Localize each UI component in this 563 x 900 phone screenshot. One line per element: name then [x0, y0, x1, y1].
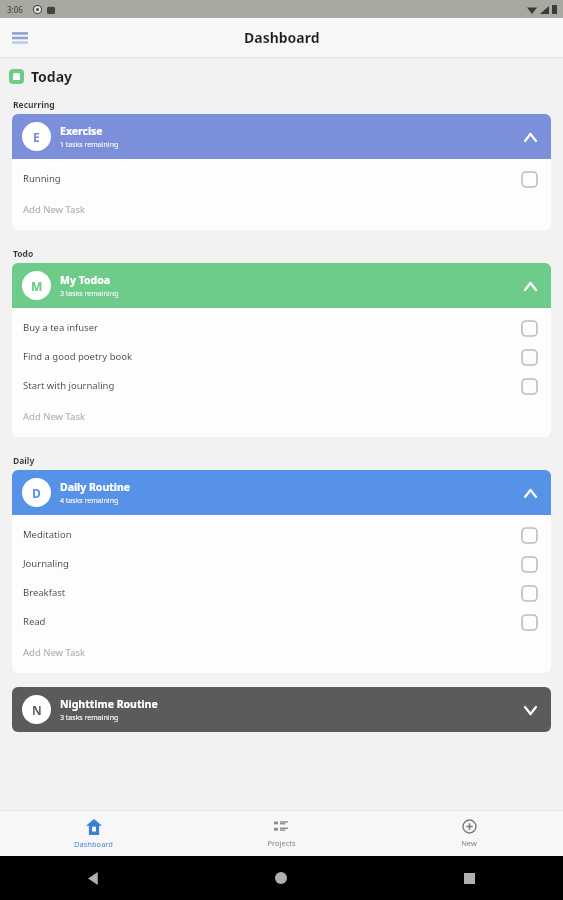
button[interactable]: Breakfast — [12, 578, 551, 607]
button[interactable]: M — [12, 263, 551, 308]
button[interactable]: Open navigation menu — [5, 23, 35, 53]
button[interactable]: D — [12, 470, 551, 515]
staticText: Daily — [13, 455, 35, 467]
staticText: My Todoa — [60, 273, 111, 287]
staticText: E — [33, 129, 40, 145]
button[interactable]: Running — [12, 164, 551, 193]
button[interactable]: New — [375, 811, 563, 856]
staticText: M — [31, 278, 43, 294]
staticText: Dashboard — [244, 28, 320, 47]
staticText: 1 tasks remaining — [60, 140, 119, 150]
button[interactable]: Projects — [187, 811, 375, 856]
staticText: Read — [23, 615, 518, 628]
staticText: Find a good poetry book — [23, 350, 518, 363]
button[interactable]: Mark Meditation complete — [518, 524, 540, 546]
staticText: Nighttime Routine — [60, 697, 158, 711]
button[interactable]: Mark Running complete — [518, 168, 540, 190]
button[interactable]: Add New Task — [12, 636, 551, 669]
staticText: N — [32, 702, 42, 718]
button[interactable]: Mark Journaling complete — [518, 553, 540, 575]
staticText: 3 tasks remaining — [60, 289, 119, 299]
staticText: Running — [23, 172, 518, 185]
button[interactable]: Buy a tea infuser — [12, 313, 551, 342]
staticText: Add New Task — [23, 410, 86, 423]
button[interactable]: Read — [12, 607, 551, 636]
staticText: Daily Routine — [60, 480, 131, 494]
button[interactable]: Back — [79, 863, 109, 893]
button[interactable]: Collapse — [519, 126, 541, 148]
button[interactable]: Journaling — [12, 549, 551, 578]
button[interactable]: Dashboard — [0, 811, 187, 856]
button[interactable]: Mark Find a good poetry book complete — [518, 346, 540, 368]
button[interactable]: Mark Buy a tea infuser complete — [518, 317, 540, 339]
staticText: Breakfast — [23, 586, 518, 599]
button[interactable]: Start with journaling — [12, 371, 551, 400]
button[interactable]: Add New Task — [12, 193, 551, 226]
button[interactable]: Add New Task — [12, 400, 551, 433]
staticText: 4 tasks remaining — [60, 496, 119, 506]
button[interactable]: Mark Breakfast complete — [518, 582, 540, 604]
button[interactable]: Meditation — [12, 520, 551, 549]
staticText: Meditation — [23, 528, 518, 541]
staticText: Recurring — [13, 99, 55, 111]
staticText: 3 tasks remaining — [60, 713, 119, 723]
staticText: Exercise — [60, 124, 103, 138]
staticText: 3:06 — [7, 4, 23, 15]
button[interactable]: Mark Read complete — [518, 611, 540, 633]
staticText: D — [32, 485, 41, 501]
button[interactable]: Collapse — [519, 482, 541, 504]
button[interactable]: Collapse — [519, 275, 541, 297]
button[interactable]: Find a good poetry book — [12, 342, 551, 371]
staticText: Add New Task — [23, 646, 86, 659]
button[interactable]: Expand — [519, 699, 541, 721]
button[interactable]: Recent apps — [454, 863, 484, 893]
staticText: Start with journaling — [23, 379, 518, 392]
button[interactable]: Mark Start with journaling complete — [518, 375, 540, 397]
staticText: New — [461, 838, 477, 848]
staticText: Journaling — [23, 557, 518, 570]
staticText: Today — [31, 67, 73, 86]
button[interactable]: N — [12, 687, 551, 732]
button[interactable]: Home — [266, 863, 296, 893]
staticText: Projects — [267, 838, 296, 848]
staticText: Buy a tea infuser — [23, 321, 518, 334]
staticText: Add New Task — [23, 203, 86, 216]
button[interactable]: E — [12, 114, 551, 159]
staticText: Dashboard — [74, 839, 113, 849]
staticText: Todo — [13, 248, 34, 260]
